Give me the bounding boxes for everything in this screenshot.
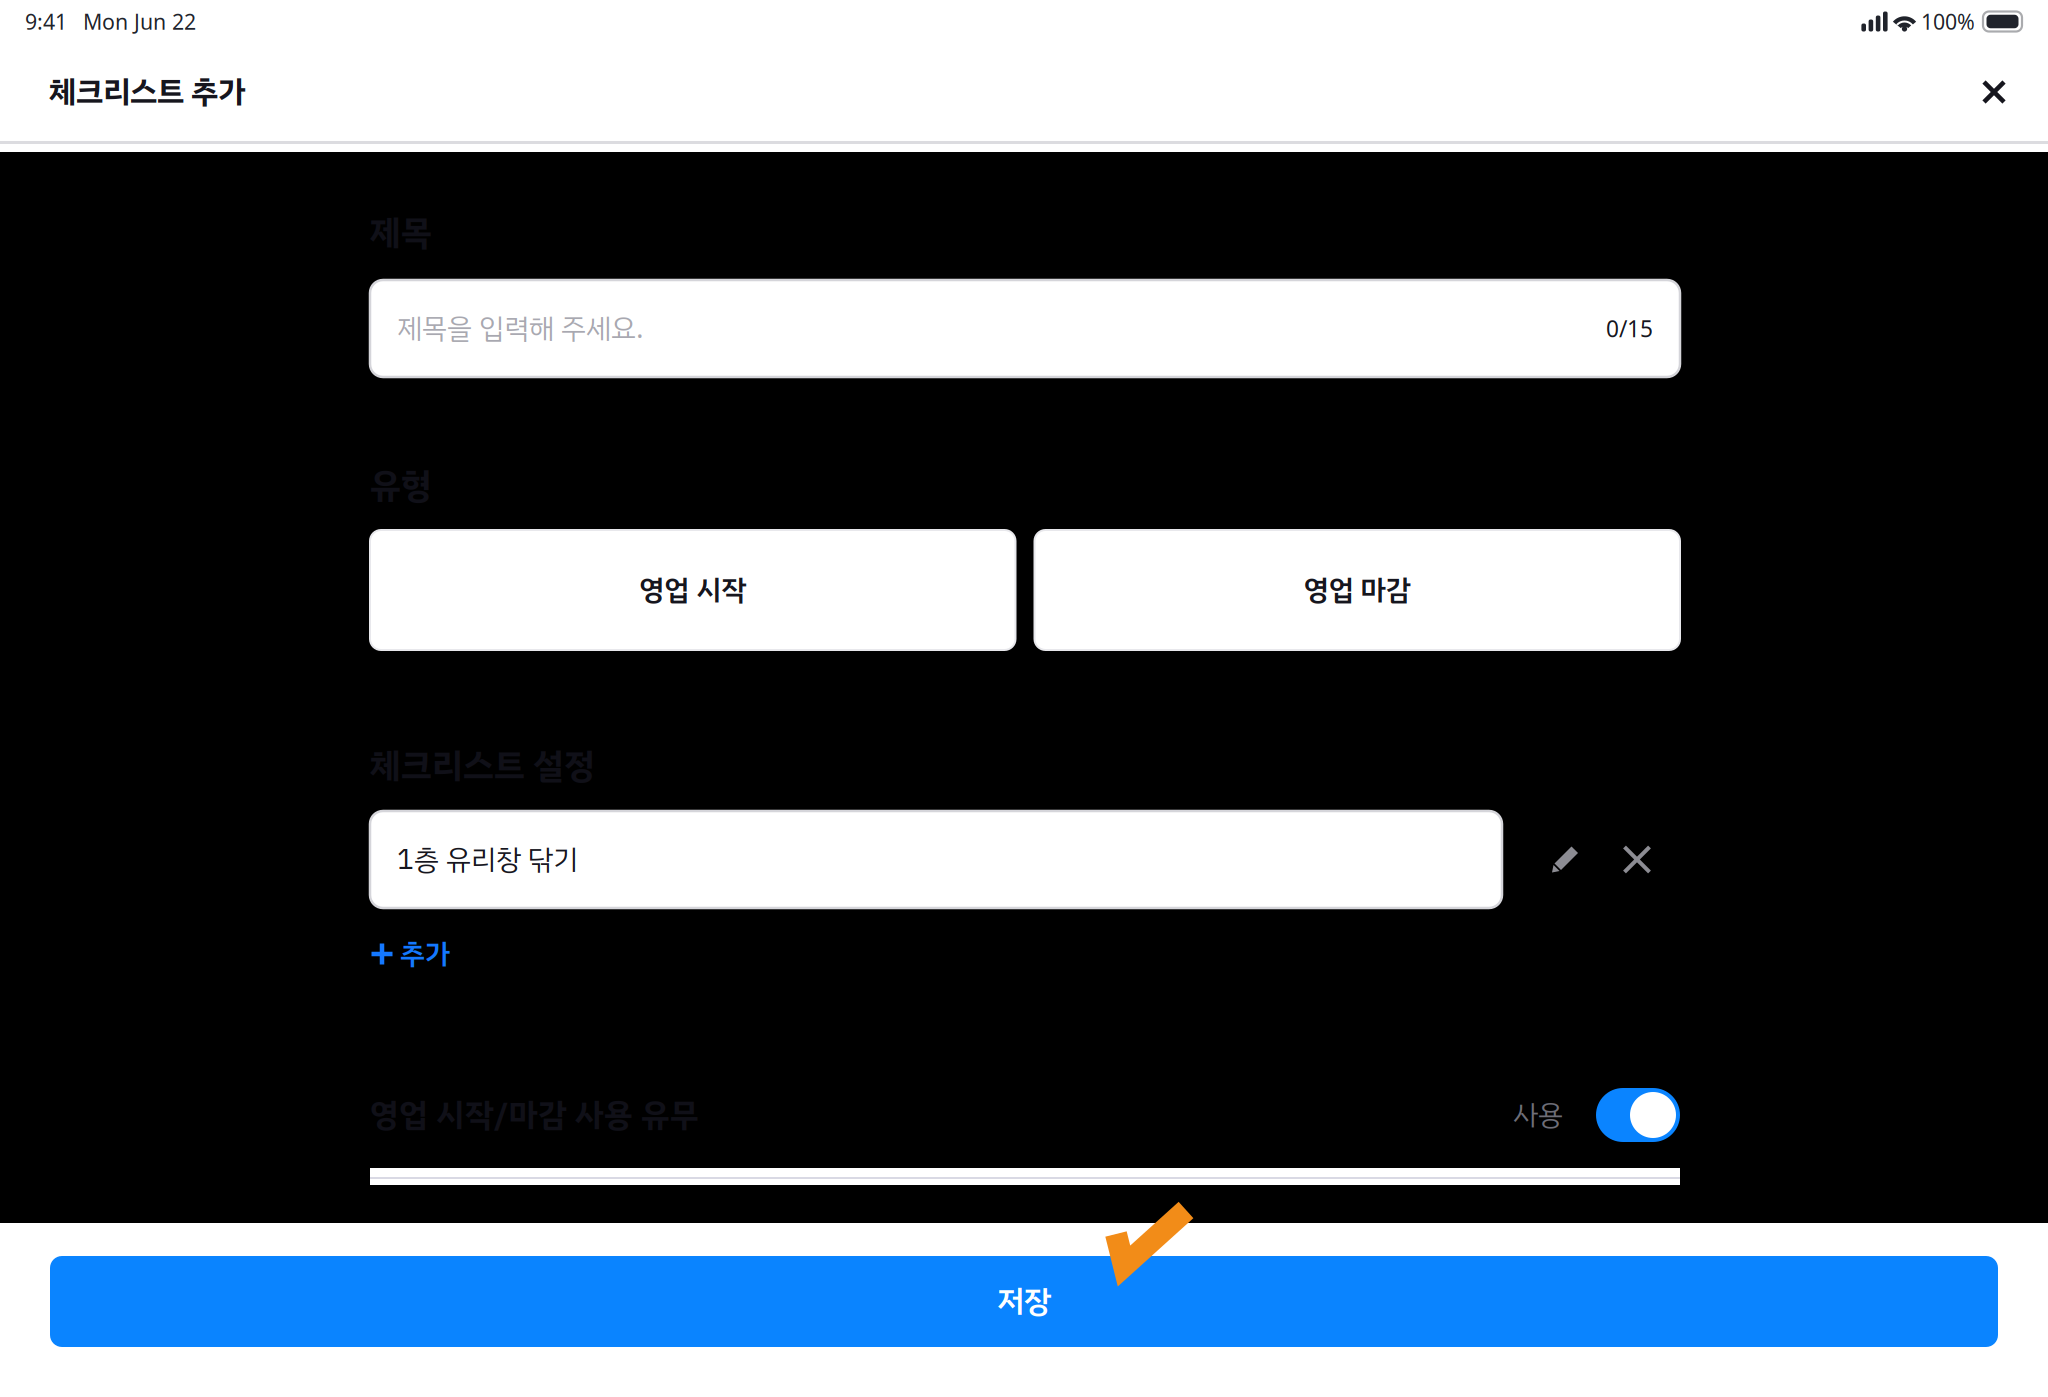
staticText: 9:41 xyxy=(25,7,67,36)
staticText: 1층 유리창 닦기 xyxy=(397,838,578,880)
staticText: 100% xyxy=(1921,7,1975,36)
button[interactable]: Edit item xyxy=(1540,834,1590,884)
button[interactable]: Use opening and closing hours xyxy=(1596,1088,1680,1142)
staticText: 제목을 입력해 주세요. xyxy=(397,307,644,349)
staticText: 영업 마감 xyxy=(1304,569,1411,611)
button[interactable]: 저장 xyxy=(50,1256,1998,1347)
staticText: 체크리스트 추가 xyxy=(49,69,245,115)
staticText: 추가 xyxy=(400,933,450,975)
staticText: 저장 xyxy=(997,1278,1051,1324)
staticText: 체크리스트 설정 xyxy=(370,740,595,792)
staticText: 제목 xyxy=(370,207,432,259)
staticText: 유형 xyxy=(370,460,432,512)
staticText: 사용 xyxy=(1513,1094,1563,1136)
button[interactable]: Delete item xyxy=(1612,834,1662,884)
button[interactable]: Close xyxy=(1964,62,2024,122)
staticText: 영업 시작 xyxy=(639,569,746,611)
button[interactable]: 영업 시작 xyxy=(370,530,1015,650)
staticText: 영업 시작/마감 사용 유무 xyxy=(370,1091,699,1139)
staticText: 0/15 xyxy=(1606,313,1653,343)
button[interactable]: 영업 마감 xyxy=(1034,530,1680,650)
staticText: Mon Jun 22 xyxy=(83,7,196,36)
button[interactable]: 추가 xyxy=(370,934,1680,974)
